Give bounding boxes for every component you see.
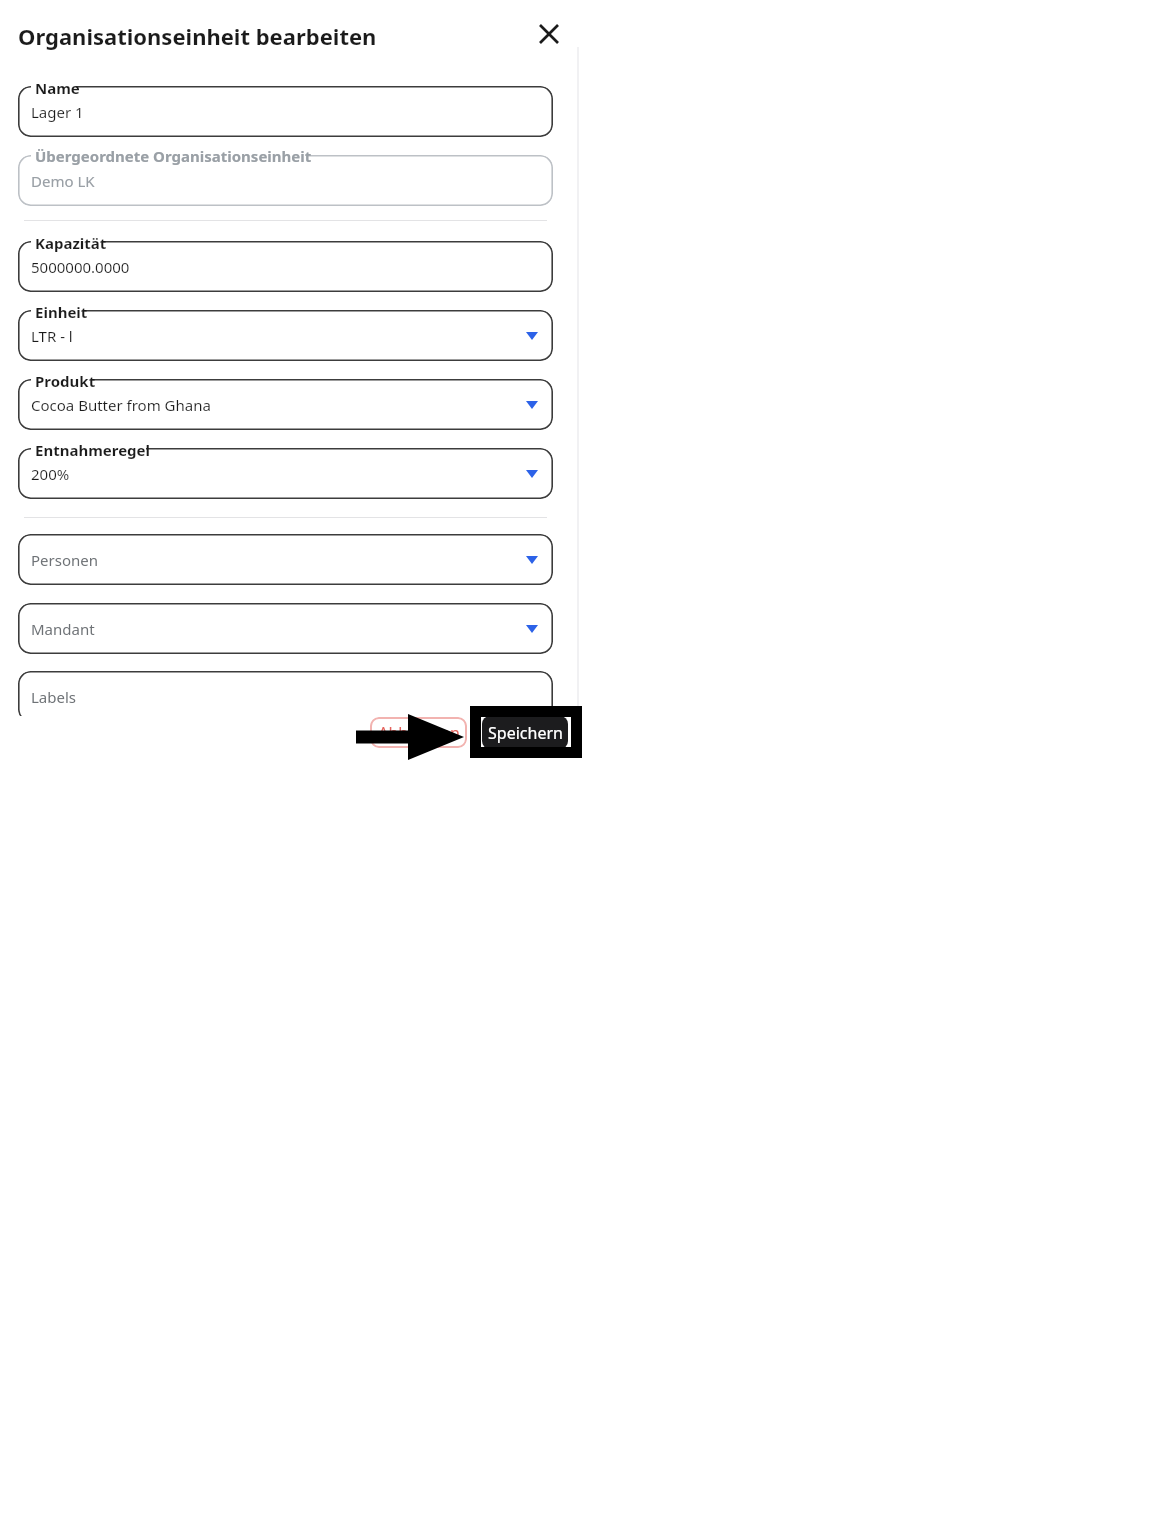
button[interactable]: Einheit — [18, 310, 553, 361]
button[interactable]: Personen — [18, 534, 553, 585]
button[interactable]: Mandant — [18, 603, 553, 654]
button[interactable]: Schließen — [533, 18, 565, 50]
staticText: Produkt — [35, 371, 96, 391]
staticText: Abbrechen — [378, 722, 460, 744]
button[interactable]: Labels — [18, 671, 553, 722]
staticText: Einheit — [35, 302, 88, 322]
button[interactable]: Produkt — [18, 379, 553, 430]
staticText: Speichern — [488, 722, 563, 744]
staticText: Übergeordnete Organisationseinheit — [35, 146, 312, 166]
staticText: Demo LK — [31, 171, 95, 191]
staticText: Kapazität — [35, 233, 107, 253]
staticText: 200% — [31, 464, 70, 484]
button[interactable]: Übergeordnete Organisationseinheit — [18, 155, 553, 206]
button[interactable]: Speichern — [482, 716, 568, 749]
button[interactable]: Entnahmeregel — [18, 448, 553, 499]
staticText: Lager 1 — [31, 102, 84, 122]
staticText: Name — [35, 78, 80, 98]
staticText: Organisationseinheit bearbeiten — [18, 21, 377, 51]
staticText: Entnahmeregel — [35, 440, 150, 460]
staticText: Labels — [31, 687, 77, 707]
staticText: 5000000.0000 — [31, 257, 130, 277]
staticText: Mandant — [31, 619, 95, 639]
staticText: Personen — [31, 550, 98, 570]
staticText: Cocoa Butter from Ghana — [31, 395, 211, 415]
button[interactable]: Abbrechen — [370, 717, 467, 748]
button[interactable]: Name — [18, 86, 553, 137]
button[interactable]: Kapazität — [18, 241, 553, 292]
staticText: LTR - l — [31, 326, 73, 346]
